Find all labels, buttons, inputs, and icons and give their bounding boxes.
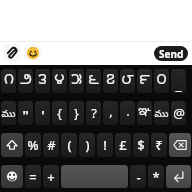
staticText: ము — [1, 108, 16, 122]
button[interactable]: @ — [171, 101, 186, 125]
staticText: _ — [175, 75, 182, 93]
staticText: + — [47, 168, 55, 186]
button[interactable]: % — [25, 133, 41, 157]
button[interactable]: , — [103, 101, 118, 125]
staticText: ౨ — [20, 71, 32, 91]
button[interactable]: £ — [115, 133, 131, 157]
button[interactable]: ' — [35, 101, 50, 125]
button[interactable]: ౭ — [103, 69, 118, 93]
button[interactable]: Emoji — [24, 44, 41, 61]
staticText: " — [22, 106, 29, 124]
button[interactable]: ౨ — [18, 69, 33, 93]
staticText: ము — [154, 108, 169, 122]
button[interactable]: ( — [61, 133, 77, 157]
button[interactable]: ౯ — [137, 69, 152, 93]
button[interactable]: = — [25, 165, 41, 188]
staticText: ఞ — [138, 104, 151, 122]
button[interactable]: ౧ — [1, 69, 16, 93]
button[interactable]: Send — [154, 46, 188, 61]
button[interactable]: ౬ — [86, 69, 101, 93]
staticText: ౦ — [156, 71, 167, 91]
staticText: ౫ — [71, 71, 82, 91]
button[interactable]: ౫ — [69, 69, 84, 93]
button[interactable]: " — [18, 101, 33, 125]
button[interactable]: ఞ — [137, 101, 152, 125]
button[interactable]: ? — [86, 101, 101, 125]
staticText: = — [29, 168, 37, 186]
button[interactable]: . — [120, 101, 135, 125]
staticText: ౮ — [121, 71, 134, 91]
staticText: ₹ — [155, 136, 163, 154]
button[interactable]: * — [148, 165, 164, 188]
button[interactable]: } — [69, 101, 84, 125]
button[interactable]: ము — [154, 101, 169, 125]
button[interactable]: ) — [79, 133, 95, 157]
button[interactable]: - — [130, 165, 146, 188]
staticText: ౯ — [139, 71, 150, 91]
staticText: ౩ — [38, 71, 47, 91]
staticText: * — [152, 168, 160, 186]
staticText: ( — [67, 136, 72, 154]
button[interactable]: ₹ — [151, 133, 167, 157]
button[interactable]: _ — [171, 69, 186, 93]
button[interactable]: + — [43, 165, 59, 188]
button[interactable]: # — [43, 133, 59, 157]
staticText: ) — [85, 136, 90, 154]
button[interactable]: ము — [1, 101, 16, 125]
staticText: . — [126, 102, 130, 120]
staticText: % — [27, 136, 39, 154]
button[interactable]: $ — [133, 133, 149, 157]
staticText: ? — [91, 104, 97, 122]
staticText: ౪ — [54, 71, 65, 91]
button[interactable]: ౮ — [120, 69, 135, 93]
button[interactable]: Attach — [3, 44, 20, 61]
staticText: - — [136, 168, 141, 186]
button[interactable]: ౦ — [154, 69, 169, 93]
staticText: £ — [119, 136, 127, 154]
staticText: { — [57, 104, 62, 122]
staticText: ' — [41, 106, 45, 124]
button[interactable]: ౩ — [35, 69, 50, 93]
button[interactable]: Backspace — [169, 133, 191, 157]
staticText: ! — [103, 136, 107, 154]
staticText: $ — [137, 136, 145, 154]
staticText: # — [47, 136, 56, 154]
button[interactable]: Enter — [166, 165, 191, 188]
staticText: Send — [159, 47, 184, 61]
button[interactable]: ! — [97, 133, 113, 157]
button[interactable]: Emoji keyboard — [1, 165, 23, 188]
button[interactable]: { — [52, 101, 67, 125]
staticText: @ — [173, 104, 185, 122]
staticText: } — [74, 104, 79, 122]
button[interactable]: Space — [61, 165, 128, 188]
staticText: ౬ — [88, 71, 99, 91]
staticText: , — [109, 102, 113, 120]
button[interactable]: ౪ — [52, 69, 67, 93]
staticText: ౧ — [4, 71, 14, 91]
button[interactable]: Shift — [1, 133, 23, 157]
staticText: ౭ — [106, 71, 115, 91]
